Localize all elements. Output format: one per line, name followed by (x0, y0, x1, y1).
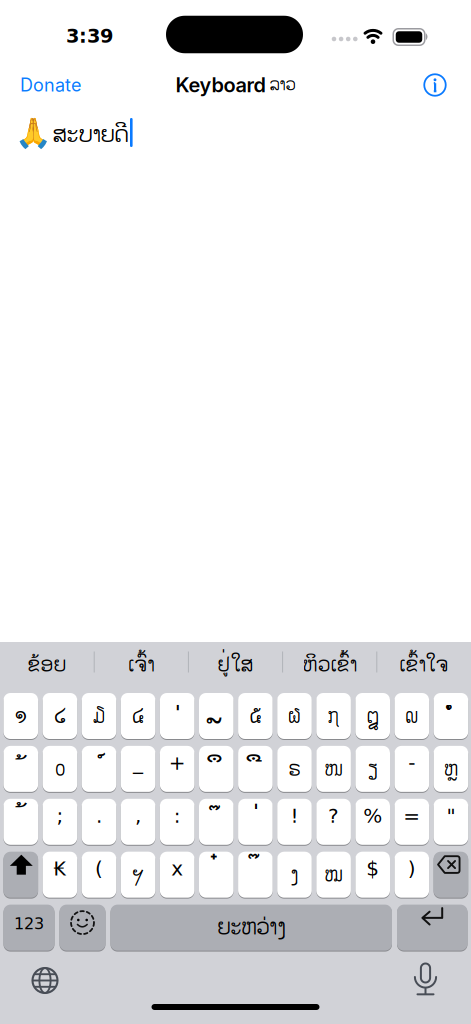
button[interactable]: ຢູ່ໃສ (190, 642, 280, 688)
staticText: ? (328, 804, 339, 827)
staticText: ໕ (249, 701, 261, 732)
button[interactable]: ື (238, 746, 273, 792)
button[interactable]: ໕ (238, 693, 273, 739)
button[interactable]: Info (424, 74, 446, 96)
button[interactable]: ຯ (121, 852, 155, 898)
staticText: x (171, 857, 183, 880)
button[interactable]: ! (277, 799, 312, 845)
staticText: ໓ (92, 701, 105, 732)
button[interactable]: ້ (3, 799, 38, 845)
button[interactable]: ( (82, 852, 116, 898)
staticText: ່ (257, 803, 267, 852)
staticText: Donate (20, 74, 81, 96)
staticText: + (169, 751, 186, 775)
button[interactable]: - (394, 746, 429, 792)
button[interactable]: ຍະຫວ່າງ (110, 905, 392, 951)
button[interactable]: ໋ (199, 852, 234, 898)
button[interactable]: ; (43, 799, 77, 845)
button[interactable]: Shift (3, 852, 38, 898)
button[interactable]: Emoji (59, 905, 105, 951)
staticText: ໖ (288, 701, 301, 732)
button[interactable]: ຂ້ອຍ (2, 642, 92, 688)
button[interactable]: ໗ (316, 693, 351, 739)
button[interactable]: Dictation (413, 962, 437, 994)
button[interactable]: ໓ (82, 693, 116, 739)
staticText: % (363, 804, 382, 827)
button[interactable]: x (160, 852, 194, 898)
button[interactable]: ໍ່ (434, 693, 468, 739)
staticText: ໊ (214, 805, 224, 854)
button[interactable]: ໔ (121, 693, 155, 739)
button[interactable]: ໑ (3, 693, 38, 739)
button[interactable]: ຽ (355, 746, 390, 792)
staticText: $ (366, 857, 379, 880)
staticText: ; (56, 804, 63, 827)
button[interactable]: Delete (434, 852, 468, 898)
staticText: ຫຼ (444, 754, 458, 784)
button[interactable]: ຶ (199, 746, 234, 792)
button[interactable]: . (82, 799, 116, 845)
staticText: ່ (179, 705, 189, 753)
button[interactable]: ່ (238, 799, 273, 845)
staticText: ຂ້ອຍ (28, 649, 67, 680)
button[interactable]: ່ (160, 693, 194, 739)
staticText: ເຈົ້າ (128, 649, 154, 680)
button[interactable]: Next keyboard (32, 968, 57, 993)
button[interactable]: ໐ (43, 746, 77, 792)
button[interactable]: " (434, 799, 468, 845)
staticText: 🙏 (15, 116, 52, 150)
staticText: ຍະຫວ່າງ (217, 911, 285, 944)
staticText: ລາວ (269, 72, 295, 98)
staticText: ໜ (325, 754, 343, 784)
button[interactable]: ໊ (199, 799, 234, 845)
button[interactable]: ຣ (277, 746, 312, 792)
button[interactable]: % (355, 799, 390, 845)
button[interactable]: ໖ (277, 693, 312, 739)
staticText: ື (254, 749, 264, 797)
button[interactable]: ຫຼ (434, 746, 468, 792)
button[interactable]: ໌ (82, 746, 116, 792)
button[interactable]: ) (394, 852, 429, 898)
staticText: ງ (290, 860, 298, 890)
button[interactable]: ໙ (394, 693, 429, 739)
button[interactable]: ຼ (199, 693, 234, 739)
staticText: ເຂົ້າໃຈ (399, 649, 448, 680)
button[interactable]: $ (355, 852, 390, 898)
staticText: ໑ (15, 701, 27, 732)
staticText: ຼ (213, 681, 223, 729)
staticText: ຫິວເຂົ້າ (303, 649, 357, 680)
staticText: ຯ (132, 860, 144, 890)
staticText: . (96, 804, 102, 827)
staticText: ໝ (325, 860, 343, 890)
button[interactable]: _ (121, 746, 155, 792)
staticText: ( (95, 857, 103, 880)
button[interactable]: 123 (3, 905, 54, 951)
staticText: 123 (14, 914, 44, 933)
staticText: 3:39 (66, 25, 113, 47)
staticText: , (135, 804, 141, 827)
staticText: ໒ (54, 701, 66, 732)
button[interactable]: ໊ (238, 852, 273, 898)
button[interactable]: = (394, 799, 429, 845)
button[interactable]: ເຂົ້າໃຈ (379, 642, 469, 688)
staticText: ! (290, 804, 298, 827)
button[interactable]: ຫິວເຂົ້າ (285, 642, 375, 688)
button[interactable]: : (160, 799, 194, 845)
button[interactable]: Return (397, 905, 467, 951)
button[interactable]: ໘ (355, 693, 390, 739)
button[interactable]: Donate (20, 74, 81, 96)
button[interactable]: + (160, 746, 194, 792)
button[interactable]: , (121, 799, 155, 845)
button[interactable]: ໜ (316, 746, 351, 792)
staticText: = (403, 804, 420, 827)
button[interactable]: ໝ (316, 852, 351, 898)
button[interactable]: ງ (277, 852, 312, 898)
button[interactable]: ໒ (43, 693, 77, 739)
button[interactable]: ້ (3, 746, 38, 792)
staticText: ໙ (405, 701, 418, 732)
button[interactable]: ? (316, 799, 351, 845)
staticText: ໔ (132, 701, 144, 732)
button[interactable]: ₭ (43, 852, 77, 898)
staticText: ໍ່ (449, 704, 459, 753)
button[interactable]: ເຈົ້າ (96, 642, 186, 688)
